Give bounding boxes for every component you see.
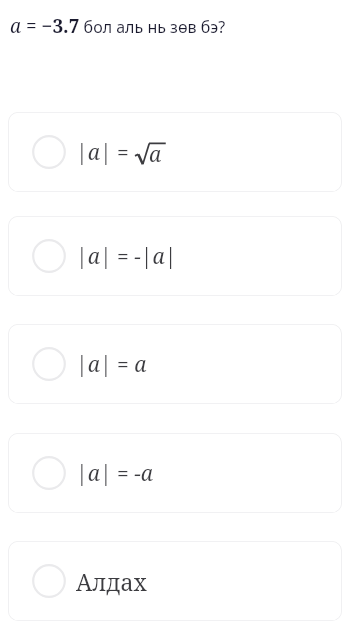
staticText: |a| =: [76, 138, 135, 167]
staticText: Алдах: [76, 566, 147, 597]
staticText: a: [149, 140, 162, 169]
button[interactable]: |a| =: [8, 112, 342, 192]
button[interactable]: |a| = a: [8, 324, 342, 404]
staticText: a = −3.7 бол аль нь зөв бэ?: [10, 13, 226, 39]
staticText: |a| = −a: [76, 459, 153, 488]
staticText: |a| = a: [76, 350, 147, 379]
button[interactable]: Алдах: [8, 541, 342, 621]
button[interactable]: |a| = −a: [8, 433, 342, 513]
staticText: |a| = −|a|: [76, 242, 177, 271]
button[interactable]: |a| = −|a|: [8, 216, 342, 296]
